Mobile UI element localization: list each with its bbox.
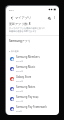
button[interactable]: Galaxy Store [10,74,57,84]
button[interactable]: Samsung Members [10,54,57,64]
button[interactable]: Search [46,15,52,21]
button[interactable]: Samsung Pay 明細 [10,94,57,104]
staticText: Samsung Music [16,65,36,69]
staticText: Samsung Members [16,55,40,59]
staticText: 更新アプリ数: 8 [9,22,31,26]
staticText: 3月13日 [16,80,24,83]
button[interactable]: Samsung Pay Framework [10,104,57,114]
button[interactable]: Samsung Notes [10,84,57,94]
staticText: 3月11日 [16,100,24,103]
staticText: Galaxy Store [16,75,32,79]
staticText: 3月15日 [16,60,24,63]
staticText: Samsung Pay 明細 [16,95,39,99]
staticText: 3月14日 [16,70,24,73]
staticText: 新機能や改善を利用できます [9,30,37,33]
staticText: Samsung Notes [16,85,36,89]
button[interactable]: More options [52,15,57,20]
staticText: 3月12日 [16,90,24,93]
staticText: マイアプリ [15,16,32,20]
staticText: Samsung Pay Framework [16,105,47,109]
staticText: すべてのアプリを最新の状態に保つと [9,27,46,30]
button[interactable]: Back [8,14,15,21]
staticText: 8 件の更新 [9,50,19,53]
button[interactable]: Samsung Music [10,64,57,74]
staticText: 3月9日 [16,110,22,113]
staticText: Samsungアプリ [9,39,31,43]
staticText: 9:41 [9,8,14,11]
